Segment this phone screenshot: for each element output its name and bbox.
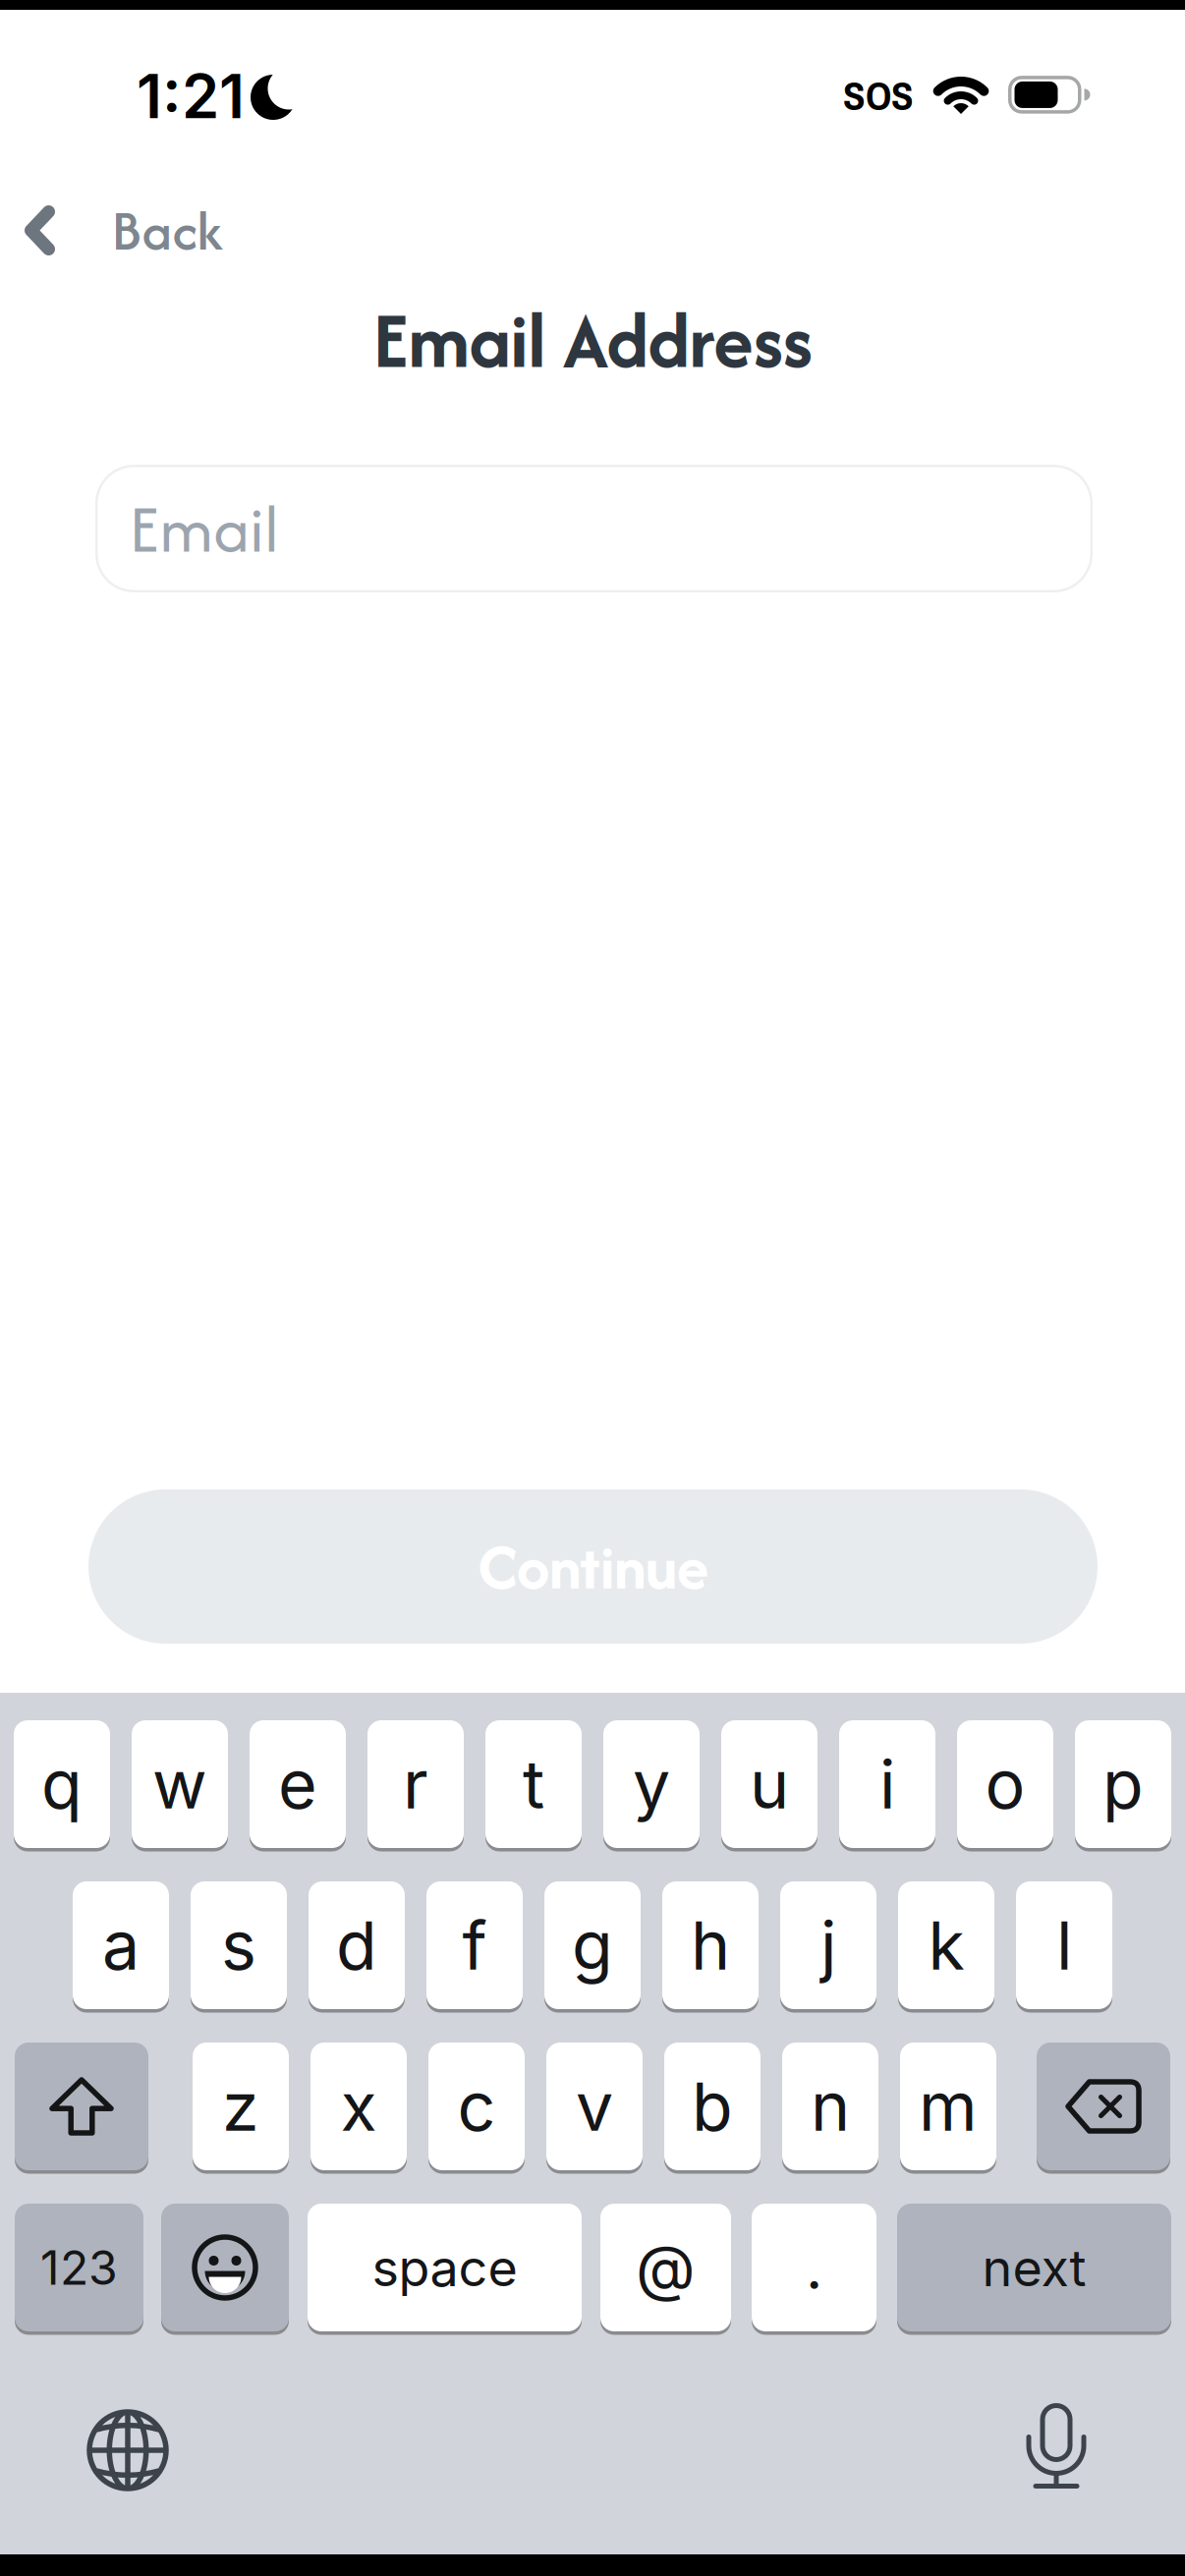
staticText: x (340, 2066, 377, 2147)
button[interactable]: space (308, 2204, 582, 2331)
button[interactable]: l (1016, 1881, 1112, 2009)
button[interactable]: f (426, 1881, 523, 2009)
staticText: g (572, 1905, 613, 1986)
staticText: m (919, 2066, 978, 2147)
staticText: o (985, 1744, 1025, 1825)
staticText: q (41, 1744, 83, 1825)
staticText: z (222, 2066, 259, 2147)
staticText: space (372, 2237, 517, 2298)
staticText: SOS (843, 68, 914, 123)
button[interactable]: w (132, 1720, 228, 1848)
staticText: w (152, 1744, 207, 1825)
staticText: p (1102, 1744, 1144, 1825)
staticText: f (462, 1905, 487, 1986)
button[interactable]: Emoji (161, 2204, 289, 2331)
button[interactable]: t (485, 1720, 582, 1848)
button[interactable]: next (897, 2204, 1171, 2331)
button[interactable]: 123 (15, 2204, 143, 2331)
button[interactable]: Shift (15, 2043, 148, 2170)
staticText: t (523, 1744, 544, 1825)
button[interactable]: g (544, 1881, 641, 2009)
staticText: 1:21 (137, 60, 245, 133)
staticText: e (278, 1744, 317, 1825)
button[interactable]: n (782, 2043, 878, 2170)
button[interactable]: i (839, 1720, 935, 1848)
staticText: 123 (40, 2239, 118, 2296)
button[interactable]: Delete (1037, 2043, 1170, 2170)
staticText: Back (112, 192, 223, 269)
staticText: i (879, 1744, 895, 1825)
button[interactable]: @ (600, 2204, 731, 2331)
staticText: d (336, 1905, 377, 1986)
button[interactable]: c (428, 2043, 525, 2170)
button[interactable]: r (367, 1720, 464, 1848)
button[interactable]: u (721, 1720, 818, 1848)
staticText: r (403, 1744, 428, 1825)
staticText: @ (636, 2230, 696, 2305)
staticText: Email Address (373, 286, 812, 394)
button[interactable]: v (546, 2043, 643, 2170)
button[interactable]: k (898, 1881, 994, 2009)
staticText: b (692, 2066, 733, 2147)
button[interactable]: z (193, 2043, 289, 2170)
button[interactable]: s (191, 1881, 287, 2009)
staticText: v (576, 2066, 613, 2147)
button[interactable]: x (310, 2043, 407, 2170)
button[interactable]: h (662, 1881, 759, 2009)
staticText: s (221, 1905, 256, 1986)
button[interactable]: m (900, 2043, 996, 2170)
staticText: l (1056, 1905, 1072, 1986)
staticText: Email (129, 482, 279, 575)
button[interactable]: . (752, 2204, 876, 2331)
button[interactable]: j (780, 1881, 876, 2009)
staticText: k (928, 1905, 964, 1986)
button[interactable]: Next keyboard (89, 2412, 166, 2489)
button[interactable]: Back (31, 192, 223, 269)
button[interactable]: Email (95, 465, 1093, 592)
staticText: next (982, 2237, 1086, 2298)
staticText: a (102, 1905, 140, 1986)
button[interactable]: p (1075, 1720, 1171, 1848)
button[interactable]: a (73, 1881, 169, 2009)
staticText: n (811, 2066, 850, 2147)
staticText: Continue (478, 1523, 708, 1610)
button[interactable]: q (14, 1720, 110, 1848)
staticText: c (457, 2066, 496, 2147)
staticText: u (750, 1744, 789, 1825)
staticText: y (633, 1744, 670, 1825)
staticText: . (806, 2232, 822, 2303)
button[interactable]: b (664, 2043, 761, 2170)
staticText: j (820, 1905, 836, 1986)
button[interactable]: Dictation (1029, 2406, 1084, 2489)
button[interactable]: y (603, 1720, 700, 1848)
button[interactable]: d (309, 1881, 405, 2009)
button[interactable]: o (957, 1720, 1053, 1848)
staticText: h (691, 1905, 730, 1986)
button[interactable]: e (250, 1720, 346, 1848)
button[interactable]: Continue (88, 1489, 1098, 1644)
